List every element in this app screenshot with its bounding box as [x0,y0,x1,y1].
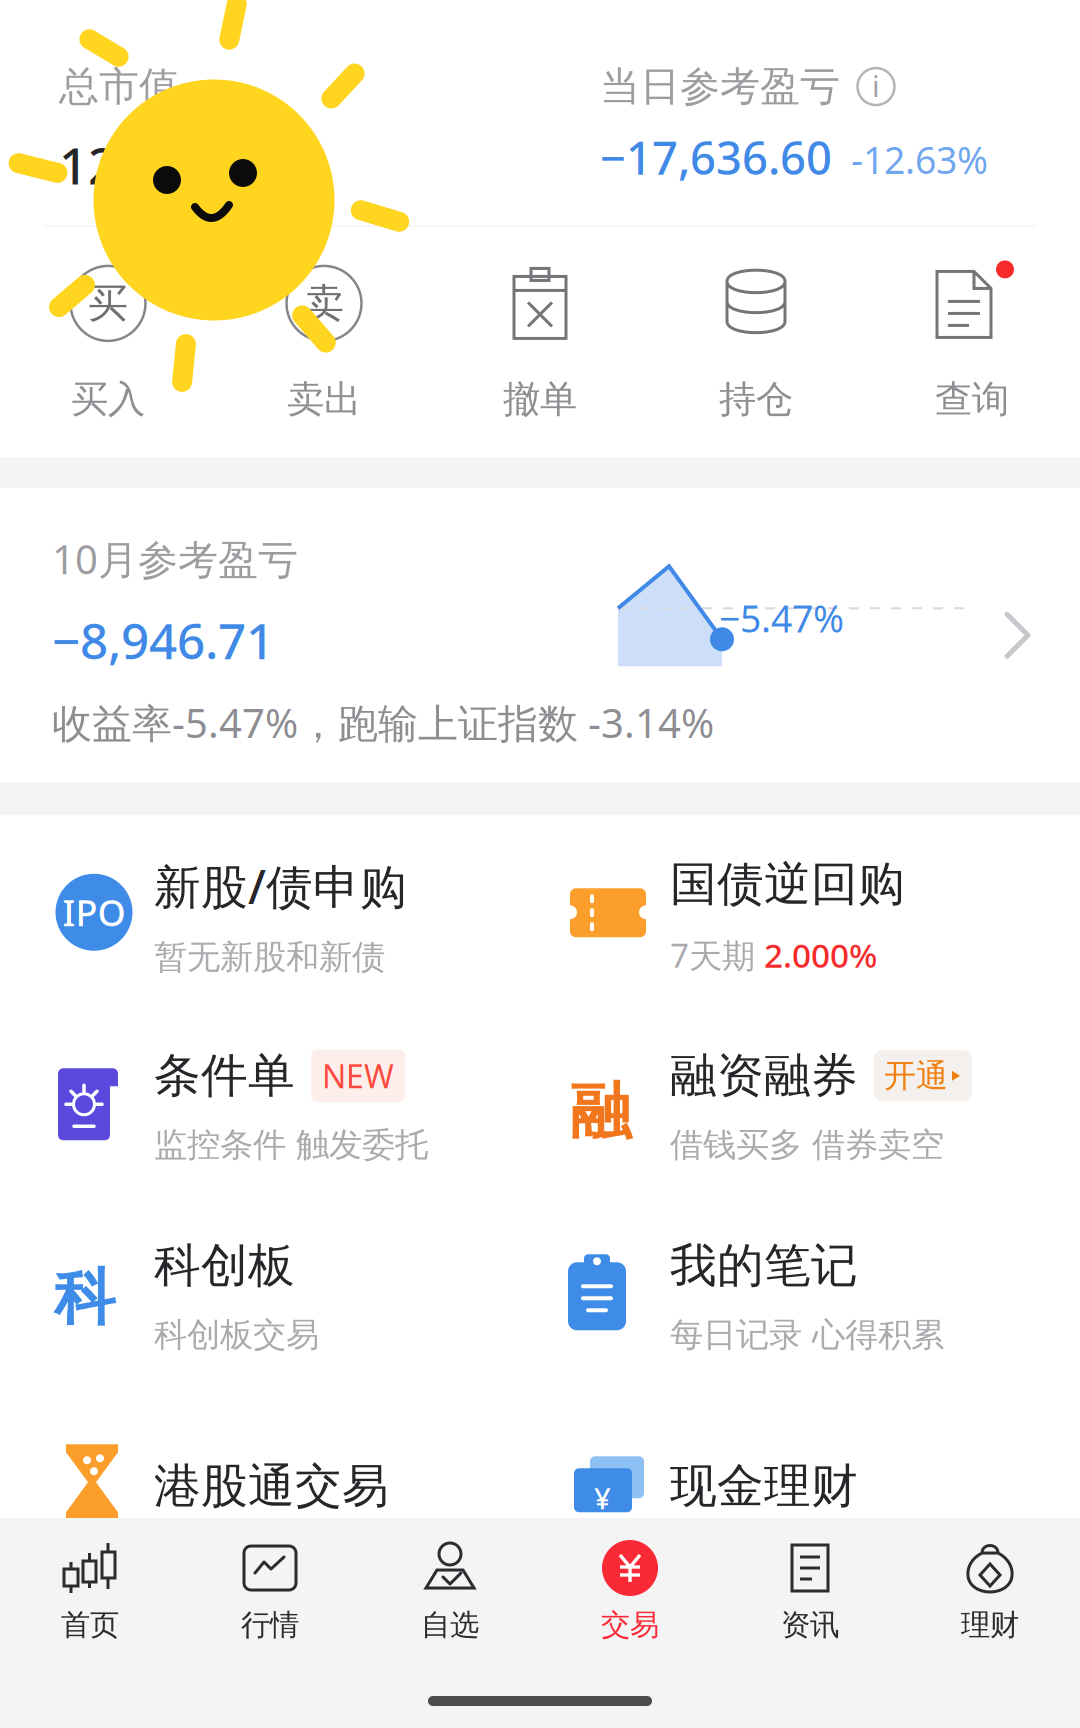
button[interactable]: 行情 [180,1539,360,1643]
button[interactable]: 首页 [0,1539,180,1643]
button[interactable]: 撤单 [432,263,648,422]
button[interactable]: 交易 [540,1539,720,1643]
staticText: ¥ [594,1478,611,1517]
button[interactable]: 持仓 [648,263,864,422]
staticText: −17,636.60 [600,127,832,187]
staticText: 查询 [935,376,1009,422]
staticText: 持仓 [719,376,793,422]
staticText: 监控条件 触发委托 [154,1124,428,1165]
button[interactable]: 自选 [360,1539,540,1643]
button[interactable]: 港股通交易 [0,1385,519,1575]
staticText: -12.63% [851,135,988,184]
button[interactable]: 理财 [900,1539,1080,1643]
staticText: 行情 [241,1607,299,1643]
staticText: 撤单 [503,376,577,422]
button[interactable]: 资讯 [720,1539,900,1643]
staticText: 科创板 [154,1237,295,1294]
staticText: i [872,66,880,105]
staticText: 国债逆回购 [670,855,905,913]
staticText: NEW [322,1055,394,1097]
staticText: 123,456.78 [59,131,319,198]
staticText: 新股/债申购 [154,855,407,917]
staticText: 条件单 [154,1047,295,1104]
button[interactable]: 我的笔记 [519,1195,1080,1385]
staticText: 2.000% [764,933,877,977]
button[interactable]: 融 [519,1005,1080,1195]
button[interactable]: IPO [0,815,519,1005]
staticText: 暂无新股和新债 [154,937,385,978]
button[interactable]: 科 [0,1195,519,1385]
staticText: 借钱买多 借券卖空 [670,1124,944,1165]
staticText: 科 [54,1260,115,1336]
staticText: 我的笔记 [670,1237,858,1294]
button[interactable]: 查询 [864,263,1080,422]
staticText: 卖出 [287,376,361,422]
staticText: 7天期 [670,933,755,977]
staticText: 买 [88,279,128,328]
staticText: 开通 [884,1056,948,1095]
staticText: 港股通交易 [154,1458,389,1515]
staticText: 理财 [961,1607,1019,1643]
staticText: 融资融券 [670,1047,858,1104]
button[interactable]: 买 [0,263,216,422]
staticText: 首页 [61,1607,119,1643]
staticText: 10月参考盈亏 [52,532,298,585]
staticText: 融 [570,1074,631,1150]
staticText: 卖 [304,279,344,328]
staticText: 资讯 [781,1607,839,1643]
staticText: 当日参考盈亏 [600,62,840,111]
staticText: −8,946.71 [52,607,274,673]
staticText: 收益率-5.47%，跑输上证指数 -3.14% [52,696,714,749]
staticText: 交易 [601,1607,659,1643]
button[interactable]: ¥ [519,1385,1080,1575]
staticText: 现金理财 [670,1458,858,1515]
staticText: 总市值 [59,62,179,111]
staticText: 买入 [71,376,145,422]
staticText: 每日记录 心得积累 [670,1314,944,1355]
staticText: 自选 [421,1607,479,1643]
staticText: IPO [62,888,125,936]
button[interactable]: 10月参考盈亏 [0,488,1080,782]
staticText: −5.47% [719,593,844,643]
button[interactable]: 条件单 [0,1005,519,1195]
button[interactable]: 国债逆回购 [519,815,1080,1005]
staticText: 科创板交易 [154,1314,319,1355]
button[interactable]: 卖 [216,263,432,422]
